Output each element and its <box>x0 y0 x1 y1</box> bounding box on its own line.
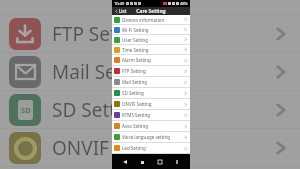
staticText: FTP Setting <box>122 68 146 74</box>
button[interactable]: Alarm Setting <box>112 55 190 65</box>
staticText: SD Setting <box>52 97 145 123</box>
button[interactable]: Voice language setting <box>112 132 190 142</box>
button[interactable]: Devices information <box>112 15 190 24</box>
button[interactable]: Menu <box>172 157 182 167</box>
button[interactable]: Wi-Fi Setting <box>112 25 190 34</box>
button[interactable]: Time Setting <box>112 45 190 54</box>
staticText: Wi-Fi Setting <box>122 27 149 33</box>
button[interactable]: Recents <box>155 157 165 167</box>
button[interactable]: ONVIF Setting <box>112 99 190 109</box>
staticText: Devices information <box>122 17 165 23</box>
staticText: Aoss Setting <box>122 123 149 129</box>
button[interactable]: Mail Setting <box>0 53 300 90</box>
staticText: SD Setting <box>122 90 144 96</box>
button[interactable]: Aoss Setting <box>112 121 190 131</box>
button[interactable]: RTMS Setting <box>112 110 190 120</box>
staticText: Voice language setting <box>122 134 171 140</box>
staticText: SD <box>21 105 31 115</box>
button[interactable]: List <box>114 8 128 14</box>
button[interactable]: SD Setting <box>112 88 190 98</box>
button[interactable]: FTP Setting <box>112 66 190 76</box>
button[interactable]: ONVIF Setting <box>0 129 300 166</box>
staticText: Alarm Setting <box>122 57 151 63</box>
staticText: ONVIF Setting <box>122 101 152 107</box>
button[interactable]: Home <box>137 157 147 167</box>
button[interactable]: Mail Setting <box>112 77 190 87</box>
staticText: Mail Setting <box>122 79 148 85</box>
staticText: Care Setting <box>136 8 166 15</box>
staticText: List <box>119 8 127 14</box>
staticText: RTMS Setting <box>122 112 150 118</box>
staticText: Led Setting <box>122 145 146 151</box>
button[interactable] <box>0 0 300 14</box>
button[interactable]: Led Setting <box>112 143 190 153</box>
staticText: 10:49 <box>114 1 125 6</box>
staticText: User Setting <box>122 37 148 43</box>
staticText: Mail Setting <box>52 59 158 85</box>
button[interactable]: Back <box>120 157 130 167</box>
staticText: Time Setting <box>122 47 149 53</box>
staticText: 48% <box>180 1 188 6</box>
button[interactable]: User Setting <box>112 35 190 44</box>
staticText: FTP Setting <box>52 21 153 47</box>
button[interactable]: FTP Setting <box>0 15 300 52</box>
staticText: ONVIF Setting <box>52 135 178 161</box>
button[interactable]: SD <box>0 91 300 128</box>
